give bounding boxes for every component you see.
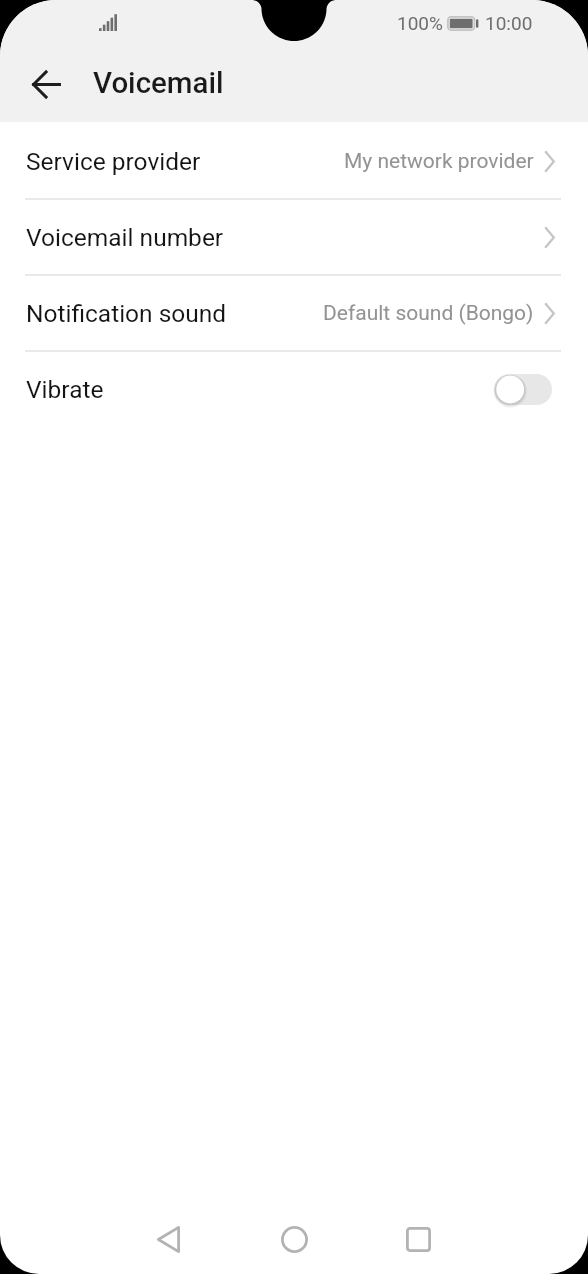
staticText: Service provider [26, 147, 201, 176]
button[interactable]: Recents [380, 1204, 456, 1274]
button[interactable]: Home [256, 1204, 332, 1274]
staticText: 10:00 [485, 12, 533, 34]
button[interactable]: Notification sound [0, 276, 588, 350]
staticText: Vibrate [26, 375, 104, 404]
button[interactable]: Back [130, 1204, 206, 1274]
button[interactable]: Vibrate [494, 374, 552, 405]
staticText: My network provider [344, 149, 534, 174]
staticText: Notification sound [26, 299, 227, 328]
button[interactable]: Vibrate [0, 352, 588, 426]
staticText: Voicemail number [26, 223, 224, 252]
staticText: 100% [397, 12, 443, 34]
button[interactable]: Back [14, 52, 78, 116]
staticText: Voicemail [93, 66, 224, 101]
button[interactable]: Voicemail number [0, 200, 588, 274]
staticText: Default sound (Bongo) [323, 301, 534, 326]
button[interactable]: Service provider [0, 124, 588, 198]
